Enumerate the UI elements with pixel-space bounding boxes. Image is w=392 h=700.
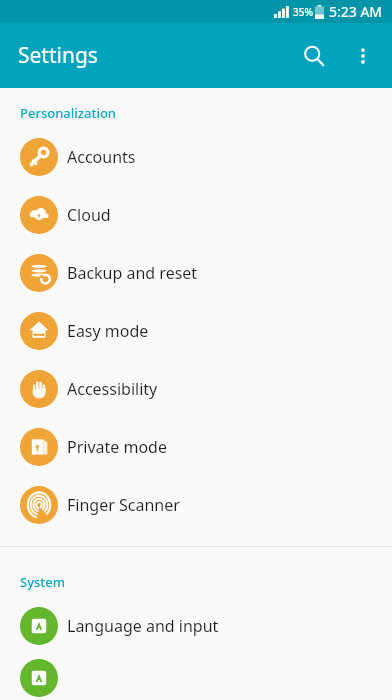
staticText: 35% bbox=[293, 5, 313, 19]
staticText: Accounts bbox=[67, 146, 136, 168]
button[interactable]: More options bbox=[340, 33, 386, 79]
staticText: Accessibility bbox=[67, 378, 158, 400]
button[interactable]: Easy mode bbox=[0, 302, 392, 360]
staticText: Cloud bbox=[67, 204, 111, 226]
button[interactable]: Language and input bbox=[0, 597, 392, 655]
staticText: Language and input bbox=[67, 615, 219, 637]
staticText: Personalization bbox=[20, 104, 116, 122]
staticText: Private mode bbox=[67, 436, 167, 458]
staticText: Finger Scanner bbox=[67, 494, 180, 516]
staticText: 5:23 AM bbox=[329, 2, 383, 21]
staticText: Easy mode bbox=[67, 320, 149, 342]
button[interactable]: Backup and reset bbox=[0, 244, 392, 302]
button[interactable] bbox=[0, 655, 392, 700]
button[interactable]: Search bbox=[288, 30, 340, 82]
staticText: Settings bbox=[18, 41, 98, 70]
button[interactable]: Private mode bbox=[0, 418, 392, 476]
button[interactable]: Cloud bbox=[0, 186, 392, 244]
button[interactable]: Finger Scanner bbox=[0, 476, 392, 534]
staticText: System bbox=[20, 573, 66, 591]
staticText: Backup and reset bbox=[67, 262, 198, 284]
button[interactable]: Accessibility bbox=[0, 360, 392, 418]
button[interactable]: Accounts bbox=[0, 128, 392, 186]
